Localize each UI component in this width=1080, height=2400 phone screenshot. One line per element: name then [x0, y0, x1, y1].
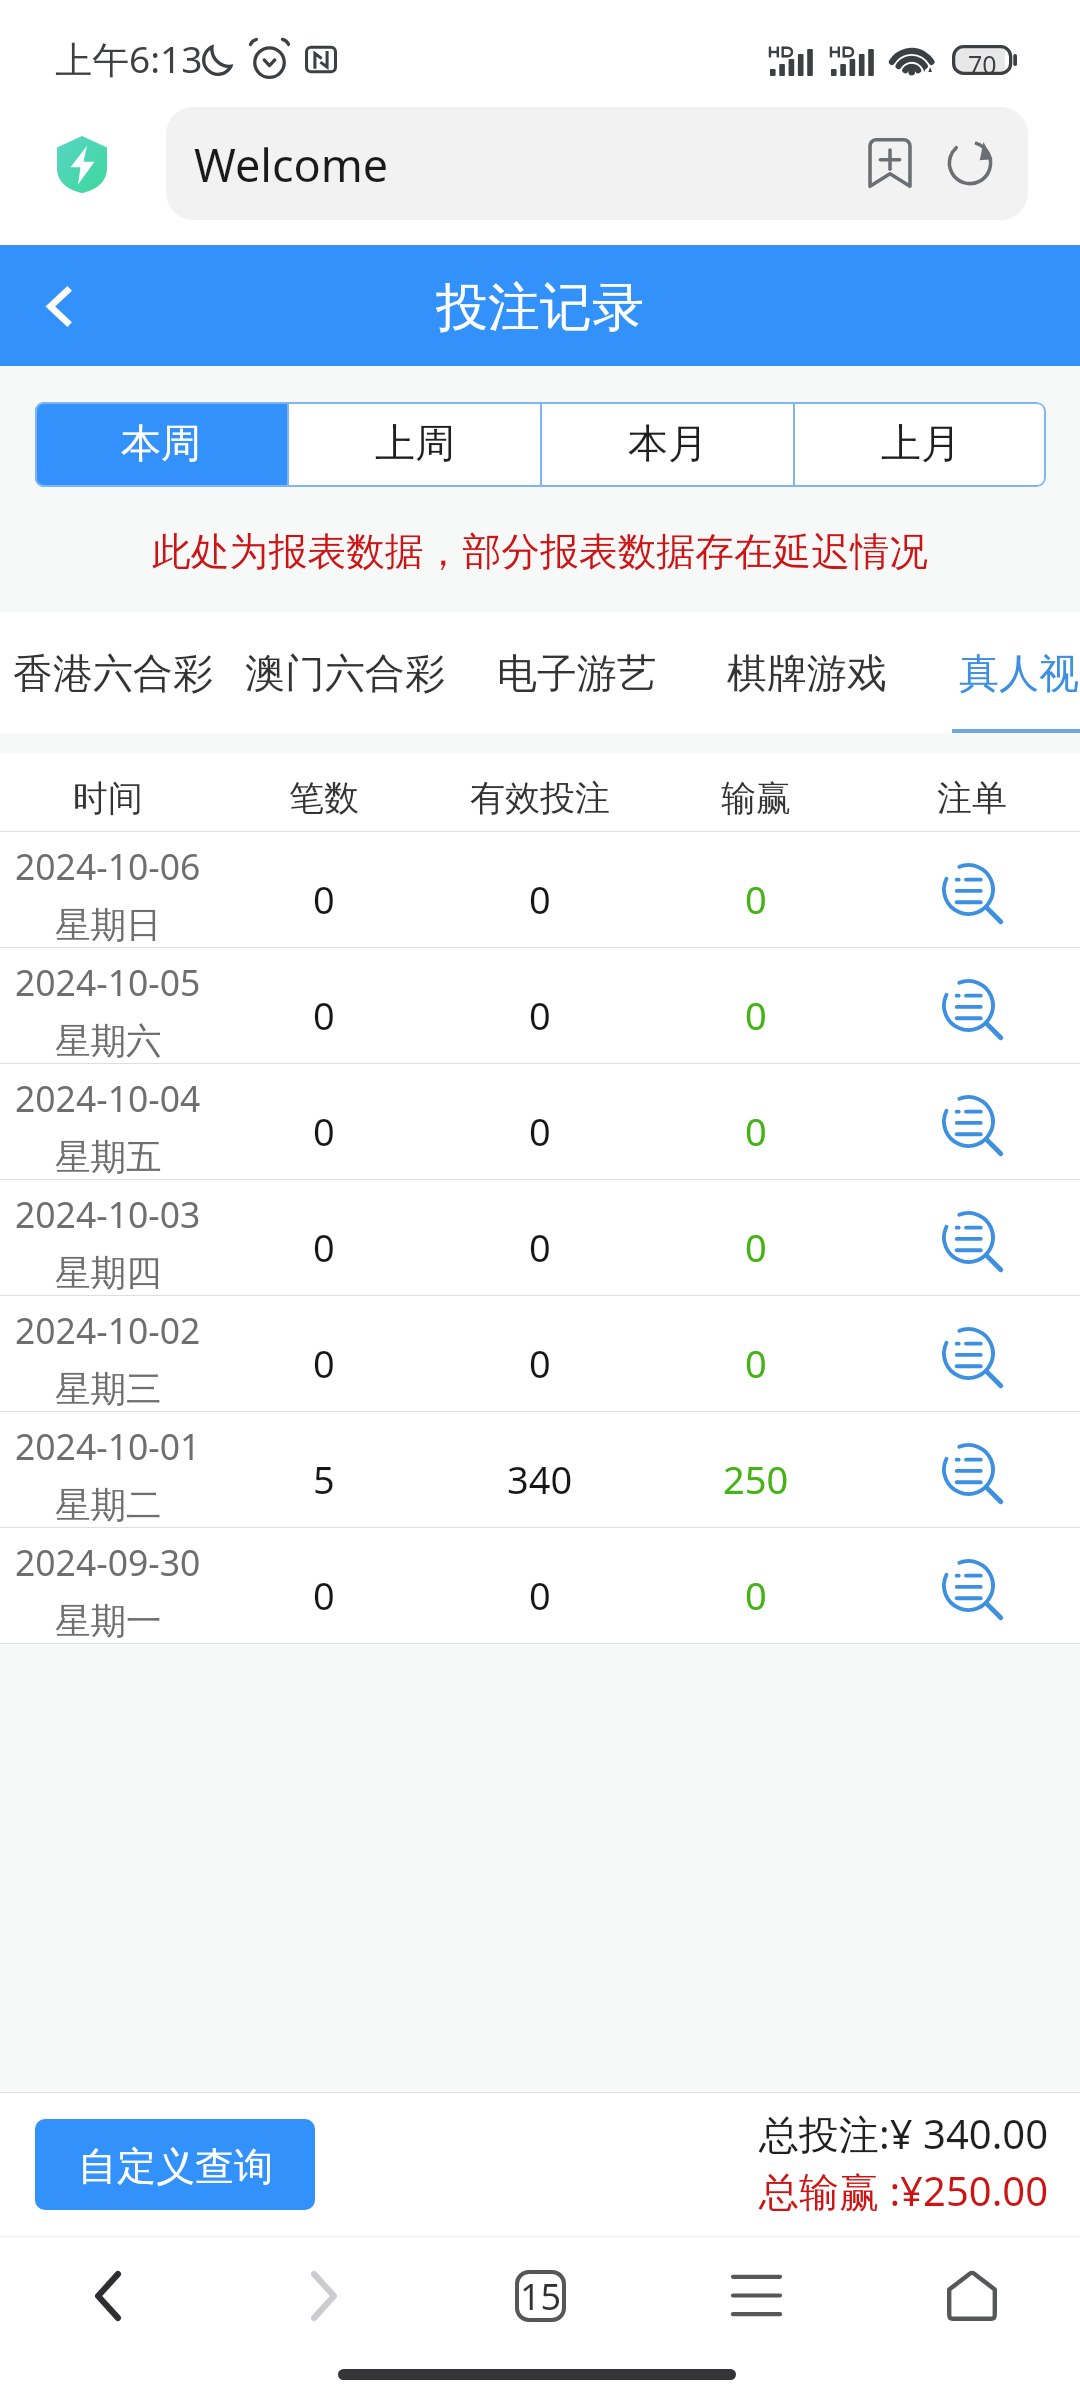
staticText: 电子游艺	[497, 648, 657, 698]
staticText: 2024-09-30	[15, 1538, 201, 1586]
staticText: 0	[313, 1569, 335, 1621]
button[interactable]: View bet details	[940, 1557, 1004, 1621]
button[interactable]: Refresh	[933, 126, 1007, 200]
staticText: 香港六合彩	[13, 648, 213, 698]
button[interactable]: 本月	[542, 402, 793, 487]
staticText: 0	[745, 1105, 767, 1157]
staticText: 2024-10-02	[15, 1306, 201, 1354]
button[interactable]: 2024-10-06	[0, 832, 1080, 948]
staticText: 此处为报表数据，部分报表数据存在延迟情况	[152, 528, 928, 577]
staticText: 0	[529, 1569, 551, 1621]
staticText: 340	[507, 1453, 573, 1505]
button[interactable]: 2024-10-01	[0, 1412, 1080, 1528]
staticText: 0	[529, 1105, 551, 1157]
staticText: 总输赢 :¥250.00	[759, 2163, 1049, 2218]
staticText: 上午6:13	[55, 33, 203, 84]
staticText: 棋牌游戏	[727, 648, 887, 698]
staticText: 15	[520, 2272, 562, 2321]
staticText: 0	[745, 873, 767, 925]
staticText: 输赢	[721, 776, 791, 820]
staticText: 澳门六合彩	[245, 648, 445, 698]
staticText: 自定义查询	[78, 2142, 273, 2191]
staticText: 本周	[121, 418, 201, 468]
staticText: 有效投注	[470, 776, 610, 820]
staticText: 250	[723, 1453, 789, 1505]
staticText: 0	[529, 873, 551, 925]
button[interactable]: Site security	[57, 136, 107, 193]
button[interactable]: Tabs	[432, 2237, 648, 2354]
staticText: 2024-10-04	[15, 1074, 201, 1122]
staticText: 0	[745, 1221, 767, 1273]
button[interactable]: View bet details	[940, 1441, 1004, 1505]
staticText: 0	[529, 1337, 551, 1389]
staticText: 星期一	[55, 1599, 162, 1644]
button[interactable]: 澳门六合彩	[232, 612, 484, 733]
staticText: 上月	[881, 418, 961, 468]
button[interactable]: 真人视	[942, 612, 1080, 733]
staticText: 星期二	[55, 1483, 162, 1528]
button[interactable]: Forward	[216, 2237, 432, 2354]
button[interactable]: Menu	[648, 2237, 864, 2354]
staticText: 时间	[73, 776, 143, 820]
staticText: 0	[745, 1337, 767, 1389]
button[interactable]: Add bookmark	[853, 126, 927, 200]
staticText: 投注记录	[436, 275, 644, 341]
staticText: 星期四	[55, 1251, 162, 1296]
staticText: 0	[313, 1221, 335, 1273]
staticText: 0	[313, 1105, 335, 1157]
button[interactable]: 棋牌游戏	[710, 612, 942, 733]
staticText: 2024-10-06	[15, 842, 201, 890]
staticText: 0	[529, 989, 551, 1041]
button[interactable]: Back	[20, 261, 100, 351]
button[interactable]: View bet details	[940, 861, 1004, 925]
button[interactable]: 2024-10-05	[0, 948, 1080, 1064]
staticText: 本月	[628, 418, 708, 468]
button[interactable]: 上月	[795, 402, 1046, 487]
button[interactable]: 自定义查询	[35, 2119, 315, 2210]
button[interactable]: 2024-10-02	[0, 1296, 1080, 1412]
button[interactable]: 本周	[35, 402, 287, 487]
button[interactable]: Back	[0, 2237, 216, 2354]
staticText: 0	[745, 989, 767, 1041]
staticText: 2024-10-03	[15, 1190, 201, 1238]
button[interactable]: 香港六合彩	[0, 612, 232, 733]
staticText: Welcome	[194, 134, 389, 195]
button[interactable]: 上周	[289, 402, 540, 487]
button[interactable]: View bet details	[940, 1325, 1004, 1389]
staticText: 星期六	[55, 1019, 162, 1064]
staticText: 0	[313, 1337, 335, 1389]
staticText: 上周	[375, 418, 455, 468]
button[interactable]: View bet details	[940, 1209, 1004, 1273]
staticText: 0	[529, 1221, 551, 1273]
button[interactable]: View bet details	[940, 1093, 1004, 1157]
button[interactable]: 2024-10-04	[0, 1064, 1080, 1180]
staticText: 0	[313, 989, 335, 1041]
staticText: 0	[745, 1569, 767, 1621]
staticText: 总投注:¥ 340.00	[759, 2106, 1049, 2161]
button[interactable]: Home	[864, 2237, 1080, 2354]
staticText: 笔数	[289, 776, 359, 820]
staticText: 2024-10-05	[15, 958, 201, 1006]
button[interactable]: 2024-09-30	[0, 1528, 1080, 1644]
staticText: 星期日	[55, 903, 162, 948]
staticText: 注单	[937, 776, 1007, 820]
staticText: 5	[313, 1453, 335, 1505]
staticText: 70	[968, 47, 997, 81]
staticText: 星期三	[55, 1367, 162, 1412]
staticText: 真人视	[959, 648, 1079, 698]
button[interactable]: View bet details	[940, 977, 1004, 1041]
button[interactable]: 2024-10-03	[0, 1180, 1080, 1296]
staticText: 2024-10-01	[15, 1422, 201, 1470]
button[interactable]: 电子游艺	[484, 612, 710, 733]
staticText: 星期五	[55, 1135, 162, 1180]
staticText: 0	[313, 873, 335, 925]
button[interactable]: Welcome	[166, 107, 1028, 220]
